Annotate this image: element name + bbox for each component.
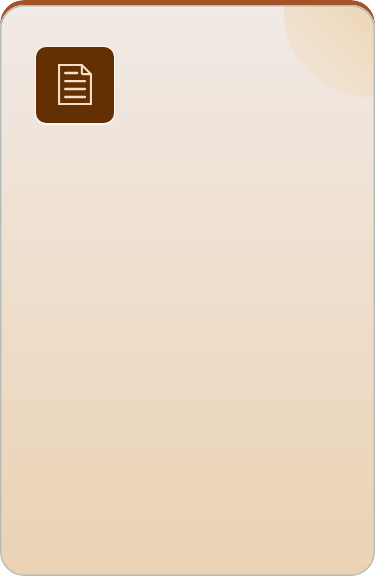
button[interactable]: Document bbox=[36, 47, 114, 123]
